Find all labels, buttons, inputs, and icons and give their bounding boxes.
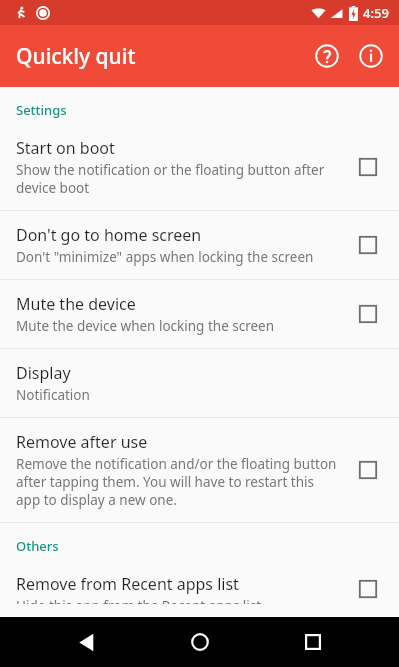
button[interactable]: Remove from Recent apps list: [0, 561, 399, 617]
button[interactable]: Start on boot: [353, 152, 383, 182]
button[interactable]: Display: [0, 349, 399, 417]
staticText: Settings: [16, 101, 399, 119]
button[interactable]: Back: [59, 617, 113, 667]
staticText: Mute the device when locking the screen: [16, 317, 275, 335]
button[interactable]: Mute the device: [353, 299, 383, 329]
button[interactable]: Don't go to home screen: [353, 230, 383, 260]
staticText: Remove after use: [16, 431, 148, 453]
button[interactable]: Remove after use: [0, 418, 399, 522]
button[interactable]: Start on boot: [0, 125, 399, 210]
button[interactable]: Home: [173, 617, 227, 667]
button[interactable]: Don't go to home screen: [0, 211, 399, 279]
staticText: Quickly quit: [16, 42, 136, 71]
button[interactable]: Help: [305, 34, 349, 78]
staticText: Others: [16, 537, 399, 555]
staticText: Notification: [16, 386, 90, 404]
staticText: Hide this app from the Recent apps list: [16, 597, 262, 604]
staticText: Mute the device: [16, 293, 136, 315]
button[interactable]: About: [349, 34, 393, 78]
button[interactable]: Mute the device: [0, 280, 399, 348]
staticText: Show the notification or the floating bu…: [16, 161, 341, 197]
staticText: Remove from Recent apps list: [16, 573, 239, 595]
staticText: Start on boot: [16, 137, 115, 159]
staticText: Don't go to home screen: [16, 224, 202, 246]
staticText: Remove the notification and/or the float…: [16, 455, 341, 509]
button[interactable]: Remove from Recent apps list: [353, 574, 383, 604]
button[interactable]: Remove after use: [353, 455, 383, 485]
button[interactable]: Recent apps: [286, 617, 340, 667]
staticText: Display: [16, 362, 71, 384]
staticText: Don't "minimize" apps when locking the s…: [16, 248, 314, 266]
staticText: 4:59: [363, 4, 389, 22]
